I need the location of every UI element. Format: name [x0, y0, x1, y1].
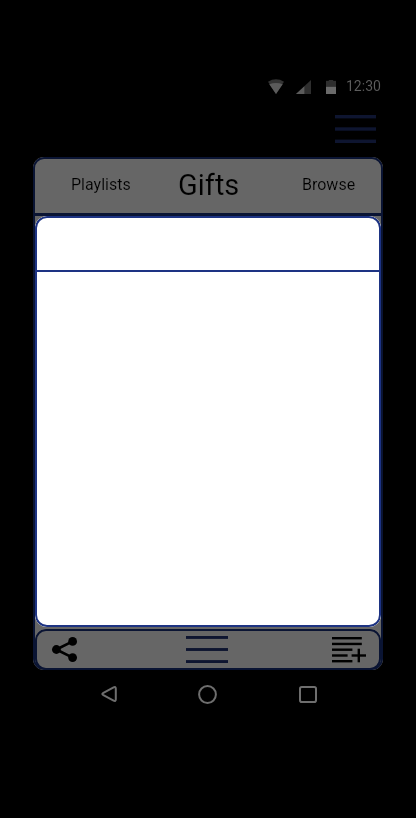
staticText: Gifts: [178, 168, 240, 202]
staticText: Playlists: [71, 175, 131, 194]
button[interactable]: Browse: [283, 157, 375, 213]
button[interactable]: Menu: [335, 115, 376, 144]
button[interactable]: Gifts: [163, 157, 255, 213]
staticText: Browse: [302, 175, 356, 194]
button[interactable]: Home: [174, 676, 240, 712]
button[interactable]: Recents: [275, 676, 341, 712]
button[interactable]: Menu: [179, 629, 235, 670]
button[interactable]: Playlists: [55, 157, 147, 213]
button[interactable]: Back: [75, 676, 141, 712]
button[interactable]: Add to playlist: [323, 629, 375, 670]
staticText: 12:30: [346, 78, 381, 94]
button[interactable]: Share: [37, 629, 91, 670]
